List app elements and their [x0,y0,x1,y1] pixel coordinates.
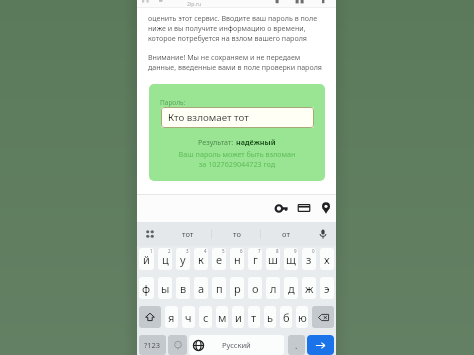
staticText: Внимание! Мы не сохраняем и не передаем … [148,52,326,72]
button[interactable]: у [176,248,190,270]
staticText: 0 [312,248,315,254]
staticText: оценить этот сервис. Вводите ваш пароль … [148,13,326,43]
button[interactable]: Saved passwords [273,194,290,222]
staticText: я [168,310,175,325]
staticText: Пароль: [160,98,186,107]
staticText: 9 [294,248,297,254]
staticText: ч [185,310,192,325]
staticText: 1 [150,248,153,254]
staticText: р [234,281,241,296]
staticText: ш [268,252,278,267]
button[interactable]: тот [163,222,212,246]
staticText: г [253,252,258,267]
staticText: 3 [186,248,189,254]
staticText: б [283,310,290,325]
button[interactable]: Emoji [168,335,187,355]
button[interactable]: р [230,277,244,299]
staticText: 4 [204,248,207,254]
staticText: з [306,252,312,267]
button[interactable]: г [248,248,262,270]
staticText: Ваш пароль может быть взломан за 1027629… [149,149,325,169]
staticText: ф [142,281,151,296]
staticText: 5 [222,248,225,254]
button[interactable]: ф [139,277,154,299]
button[interactable]: щ [284,248,298,270]
button[interactable]: Addresses [317,194,334,222]
button[interactable]: ю [296,306,308,328]
staticText: надёжный [236,137,276,147]
button[interactable]: то [212,222,261,246]
staticText: с [203,310,209,325]
staticText: то [233,229,241,239]
staticText: о [252,281,259,296]
staticText: 6 [240,248,243,254]
button[interactable]: Русский [189,335,284,355]
staticText: й [143,252,150,267]
button[interactable]: л [266,277,280,299]
staticText: ь [267,310,273,325]
staticText: Русский [222,340,251,350]
staticText: от [282,229,290,239]
button[interactable]: б [280,306,292,328]
staticText: тот [182,229,194,239]
button[interactable]: ц [158,248,172,270]
button[interactable]: ь [264,306,276,328]
staticText: п [216,281,223,296]
button[interactable]: е [212,248,226,270]
button[interactable]: от [261,222,310,246]
button[interactable]: д [284,277,298,299]
staticText: 7 [258,248,261,254]
button[interactable]: м [216,306,228,328]
button[interactable]: э [320,277,334,299]
button[interactable]: Shift [139,306,161,328]
staticText: х [324,252,330,267]
button[interactable]: т [248,306,260,328]
staticText: у [180,252,186,267]
button[interactable]: с [199,306,212,328]
button[interactable]: ч [182,306,195,328]
button[interactable]: х [320,248,334,270]
staticText: л [270,281,277,296]
button[interactable]: ш [266,248,280,270]
staticText: ю [298,310,307,325]
staticText: щ [286,252,296,267]
staticText: 2 [168,248,171,254]
button[interactable]: й [139,248,154,270]
staticText: э [324,281,330,296]
staticText: . [295,339,298,351]
button[interactable]: Change keyboard language [189,335,207,355]
staticText: в [180,281,187,296]
button[interactable]: и [232,306,244,328]
button[interactable]: я [165,306,178,328]
button[interactable]: ы [158,277,172,299]
staticText: ы [161,281,170,296]
staticText: 8 [276,248,279,254]
button[interactable]: Backspace [312,306,334,328]
button[interactable]: ж [302,277,316,299]
button[interactable]: к [194,248,208,270]
button[interactable]: о [248,277,262,299]
staticText: а [198,281,205,296]
button[interactable]: Browser address bar [137,0,336,8]
button[interactable]: а [194,277,208,299]
staticText: м [218,310,227,325]
button[interactable]: Payment cards [295,194,312,222]
staticText: ?123 [144,340,161,350]
staticText: д [288,281,295,296]
staticText: н [234,252,241,267]
button[interactable]: Voice input [310,222,336,246]
button[interactable]: п [212,277,226,299]
staticText: Кто взломает тот [168,111,249,124]
button[interactable]: н [230,248,244,270]
button[interactable]: Enter [307,335,334,355]
button[interactable]: з [302,248,316,270]
staticText: ц [162,252,169,267]
staticText: т [251,310,257,325]
button[interactable]: в [176,277,190,299]
button[interactable]: ?123 [139,335,166,355]
staticText: и [235,310,242,325]
button[interactable]: Stickers and GIFs [137,222,163,246]
button[interactable]: . [288,335,305,355]
button[interactable]: Кто взломает тот [161,107,314,128]
staticText: ж [305,281,314,296]
